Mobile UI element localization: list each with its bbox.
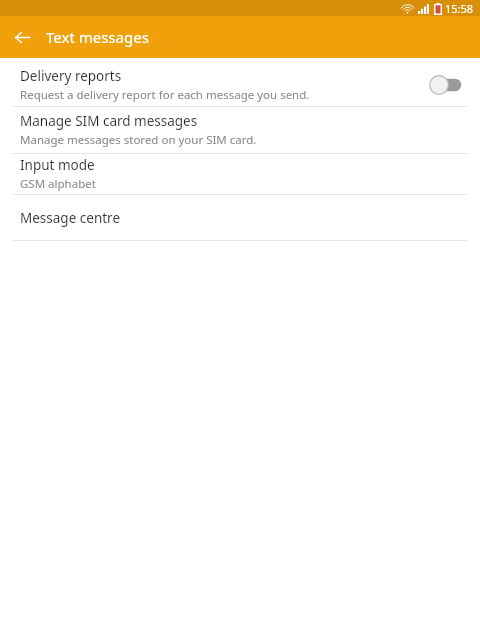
staticText: Input mode <box>20 156 95 174</box>
button[interactable]: Input mode <box>0 154 480 194</box>
staticText: 15:58 <box>445 1 474 16</box>
staticText: GSM alphabet <box>20 176 96 192</box>
staticText: Request a delivery report for each messa… <box>20 87 310 103</box>
staticText: Manage messages stored on your SIM card. <box>20 132 257 148</box>
staticText: Delivery reports <box>20 67 122 85</box>
staticText: Message centre <box>20 209 121 227</box>
button[interactable]: Delivery reports <box>0 64 480 106</box>
button[interactable]: Back <box>8 23 36 51</box>
staticText: Text messages <box>46 27 149 47</box>
button[interactable]: Manage SIM card messages <box>0 107 480 153</box>
staticText: Manage SIM card messages <box>20 112 198 130</box>
button[interactable]: Message centre <box>0 195 480 240</box>
button[interactable]: Delivery reports toggle <box>426 72 466 98</box>
